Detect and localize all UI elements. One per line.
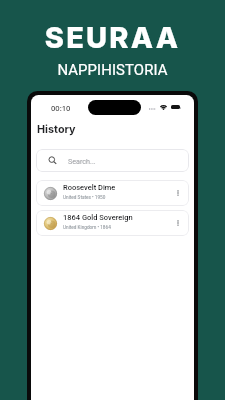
staticText: 00:10 xyxy=(51,103,71,113)
staticText: United States • 1950 xyxy=(63,195,106,201)
button[interactable]: 1864 Gold Sovereign xyxy=(36,210,189,236)
staticText: United Kingdom • 1864 xyxy=(63,225,111,231)
staticText: Roosevelt Dime xyxy=(63,183,116,192)
staticText: Search... xyxy=(68,157,96,165)
staticText: NAPPIHISTORIA xyxy=(0,61,225,78)
staticText: History xyxy=(37,123,76,136)
staticText: 1864 Gold Sovereign xyxy=(63,213,133,222)
button[interactable]: Search... xyxy=(36,149,189,172)
button[interactable]: More options xyxy=(172,217,184,229)
staticText: SEURAA xyxy=(0,20,225,55)
button[interactable]: More options xyxy=(172,187,184,199)
button[interactable]: Roosevelt Dime xyxy=(36,180,189,206)
